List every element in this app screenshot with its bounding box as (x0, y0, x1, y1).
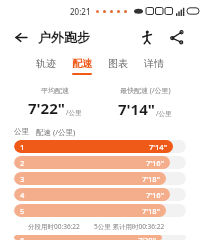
button[interactable]: 配速 (72, 57, 92, 75)
button[interactable]: 图表 (108, 57, 128, 75)
staticText: 最快配速 (/公里) (120, 86, 171, 96)
staticText: 平均配速 (41, 86, 69, 95)
button[interactable]: Back (10, 26, 32, 48)
staticText: 4 (20, 190, 25, 200)
staticText: 图表 (108, 57, 128, 70)
staticText: 详情 (144, 57, 164, 70)
staticText: 配速 (72, 57, 92, 70)
button[interactable]: 轨迹 (36, 57, 56, 75)
staticText: 轨迹 (36, 57, 56, 70)
staticText: 公里 (14, 127, 29, 136)
button[interactable]: 1 (14, 140, 186, 153)
staticText: 5公里 累计用时00:36:22 (94, 222, 165, 231)
staticText: 户外跑步 (38, 29, 90, 45)
staticText: 7'16" (146, 190, 164, 200)
button[interactable]: 2 (14, 156, 186, 169)
button[interactable]: 5 (14, 204, 186, 217)
button[interactable]: 3 (14, 172, 186, 185)
staticText: 1 (20, 142, 25, 152)
staticText: 6 (20, 235, 25, 240)
staticText: 7'18" (142, 174, 160, 184)
button[interactable]: 4 (14, 188, 186, 201)
staticText: 7'30" (138, 235, 156, 240)
staticText: 7'14" (118, 99, 155, 119)
button[interactable]: 详情 (144, 57, 164, 75)
staticText: 7'18" (142, 206, 160, 216)
staticText: 分段用时00:36:22 (28, 222, 80, 231)
button[interactable]: Run details (136, 26, 158, 48)
staticText: 7'22" (28, 98, 65, 118)
staticText: 7'16" (146, 158, 164, 168)
staticText: 3 (20, 174, 25, 184)
button[interactable]: 6 (14, 235, 186, 240)
staticText: /公里 (66, 108, 82, 117)
staticText: /公里 (156, 109, 172, 118)
staticText: 7'14" (149, 142, 167, 152)
staticText: 配速 (/公里) (36, 127, 76, 137)
staticText: 2 (20, 158, 25, 168)
staticText: 5 (20, 206, 25, 216)
button[interactable]: Share (166, 26, 188, 48)
staticText: 20:21 (70, 6, 91, 17)
